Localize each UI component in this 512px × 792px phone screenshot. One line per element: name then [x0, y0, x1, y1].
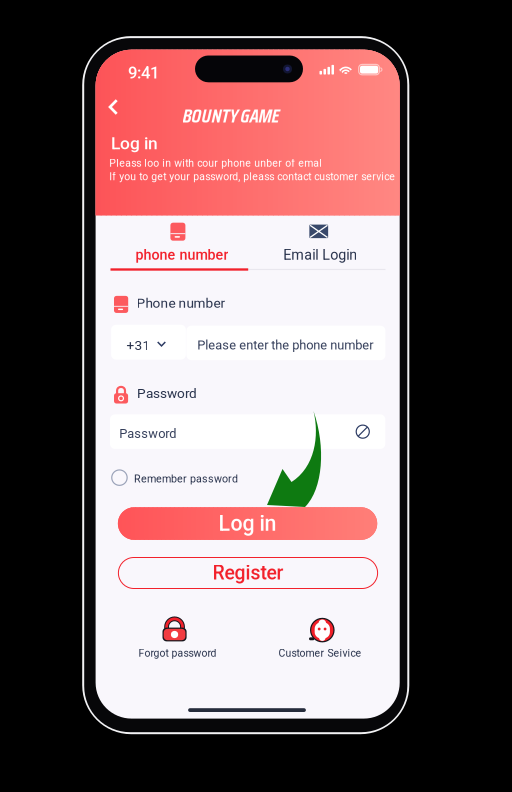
button[interactable]: Customer Seivice	[278, 612, 366, 662]
staticText: Phone number	[137, 295, 226, 311]
staticText: Please enter the phone number	[197, 337, 373, 352]
staticText: 9:41	[128, 63, 159, 83]
button[interactable]: Log in	[118, 507, 377, 540]
button[interactable]: Forgot password	[138, 612, 218, 662]
staticText: Password	[119, 426, 176, 441]
staticText: BOUNTY GAME	[183, 100, 280, 131]
button[interactable]: +31	[111, 325, 186, 360]
button[interactable]: phone number	[96, 215, 248, 271]
staticText: +31	[126, 337, 150, 353]
button[interactable]: Register	[118, 557, 378, 589]
staticText: phone number	[135, 246, 228, 263]
staticText: Register	[212, 562, 283, 584]
staticText: Forgot password	[138, 647, 216, 659]
button[interactable]: Remember password	[111, 469, 233, 486]
staticText: If you to get your password, pleass cont…	[109, 171, 395, 183]
staticText: Customer Seivice	[279, 647, 362, 659]
staticText: Remember password	[134, 472, 238, 485]
staticText: Log in	[219, 511, 277, 536]
staticText: Log in	[111, 133, 158, 153]
button[interactable]: Back	[99, 89, 129, 125]
button[interactable]: Please enter the phone number	[186, 326, 385, 360]
button[interactable]: Password	[110, 414, 385, 449]
staticText: Pleass loo in with cour phone unber of e…	[109, 157, 322, 169]
staticText: Password	[137, 385, 197, 401]
button[interactable]: Email Login	[248, 215, 400, 271]
staticText: Email Login	[283, 246, 357, 263]
